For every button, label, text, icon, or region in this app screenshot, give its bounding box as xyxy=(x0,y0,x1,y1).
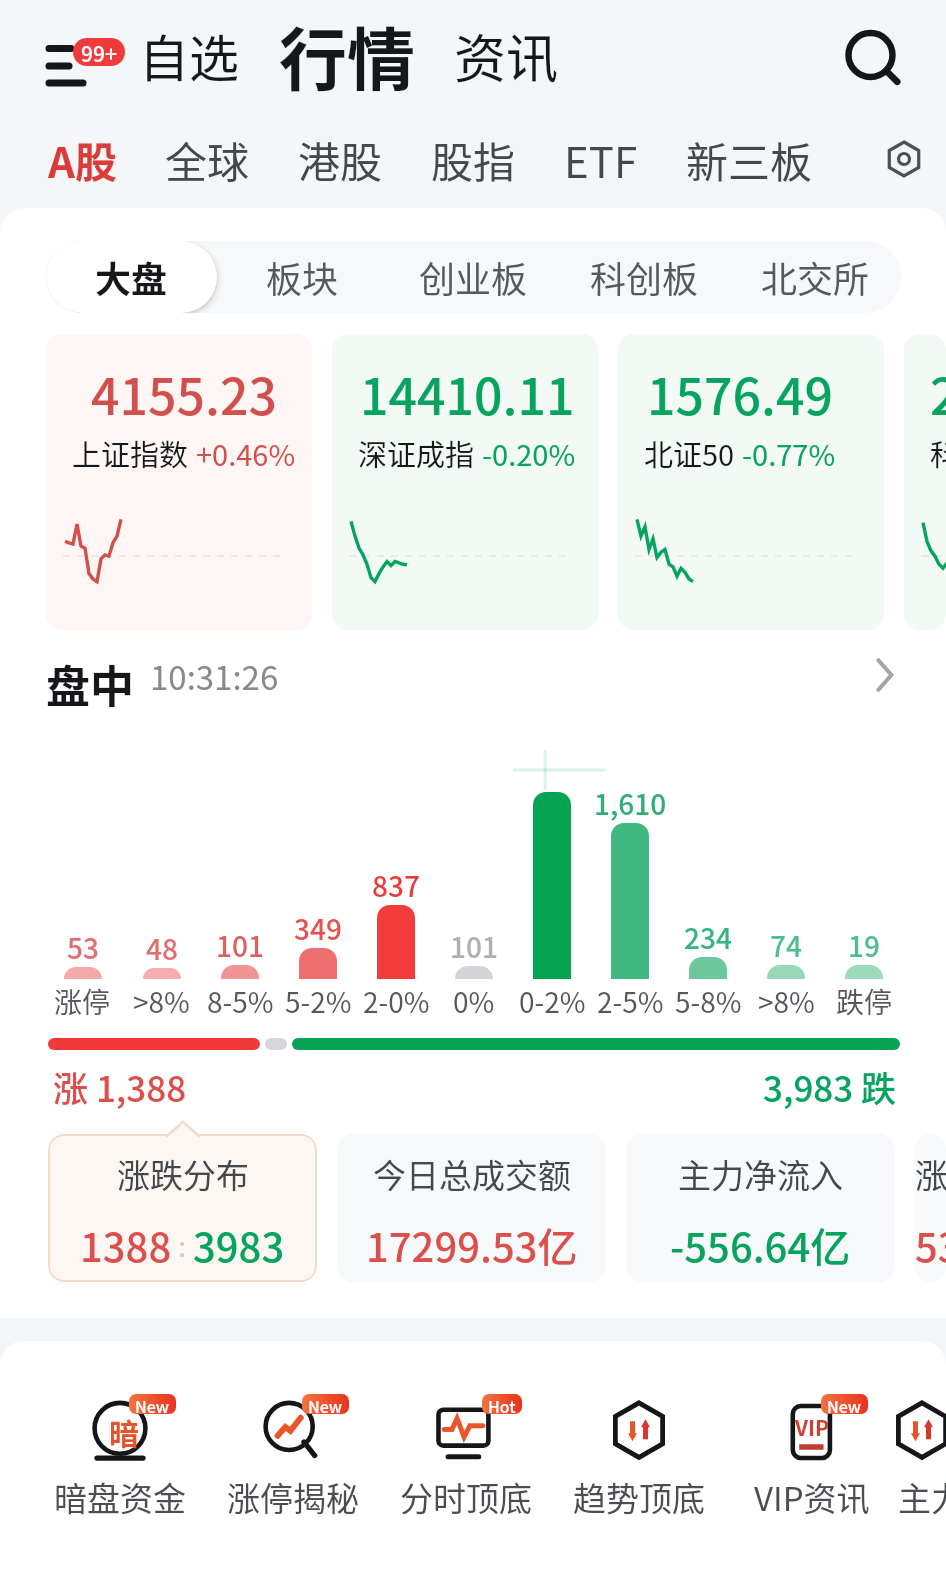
button[interactable]: Search xyxy=(834,17,910,93)
button[interactable]: 2-0% 837 xyxy=(357,768,435,1010)
staticText: 4155.23 xyxy=(91,357,277,429)
button[interactable]: 板块 xyxy=(217,241,388,313)
button[interactable]: 0-2% 1,920 xyxy=(513,768,591,1010)
staticText: >8% xyxy=(758,981,815,1022)
staticText: 1576.49 xyxy=(647,357,833,429)
button[interactable]: 创业板 xyxy=(388,241,559,313)
button[interactable]: 跌停 19 xyxy=(825,768,903,1010)
staticText: 主力大单 xyxy=(898,1473,946,1521)
button[interactable]: 涨停 53 xyxy=(43,768,122,1010)
staticText: 暗盘资金 xyxy=(54,1473,186,1521)
button[interactable]: 5-8% 234 xyxy=(669,768,747,1010)
staticText: 101 xyxy=(216,925,264,966)
button[interactable]: 14410.11 xyxy=(332,334,598,630)
button[interactable]: Hot xyxy=(379,1401,552,1521)
staticText: 跌停 xyxy=(836,981,893,1022)
button[interactable]: 0% 101 xyxy=(435,768,513,1010)
button[interactable]: 5-2% 349 xyxy=(279,768,357,1010)
staticText: 0% xyxy=(453,981,495,1022)
button[interactable]: 主力净流入 xyxy=(626,1134,895,1282)
staticText: 盘中 xyxy=(46,652,134,697)
staticText: 2251.21 xyxy=(930,357,946,429)
button[interactable]: Menu xyxy=(23,20,103,90)
staticText: 101 xyxy=(450,926,498,967)
button[interactable]: Settings xyxy=(874,129,934,189)
staticText: +0.46% xyxy=(196,432,296,474)
staticText: 74 xyxy=(770,925,802,966)
staticText: 趋势顶底 xyxy=(573,1473,705,1521)
staticText: 0-2% xyxy=(519,981,586,1022)
staticText: 股指 xyxy=(431,129,516,190)
staticText: 10:31:26 xyxy=(150,652,279,697)
staticText: 涨 1,388 xyxy=(53,1061,187,1112)
staticText: -0.20% xyxy=(482,432,576,474)
staticText: 暗 xyxy=(109,1410,139,1453)
staticText: 新三板 xyxy=(686,129,813,190)
staticText: 涨停家数 xyxy=(915,1150,946,1198)
button[interactable]: 大盘 xyxy=(46,241,217,313)
staticText: 主力净流入 xyxy=(678,1150,843,1198)
button[interactable]: 主力大单 xyxy=(898,1401,946,1521)
staticText: >8% xyxy=(133,981,190,1022)
staticText: New xyxy=(308,1394,343,1414)
button[interactable]: 涨停家数 xyxy=(915,1134,946,1282)
button[interactable]: 2251.21 xyxy=(904,334,946,630)
staticText: : xyxy=(172,1225,193,1266)
staticText: A股 xyxy=(48,129,117,190)
other: More xyxy=(862,653,906,697)
button[interactable]: 新三板 xyxy=(662,117,837,202)
staticText: 5-8% xyxy=(675,981,742,1022)
staticText: 分时顶底 xyxy=(400,1473,532,1521)
staticText: 53 xyxy=(67,927,99,968)
staticText: -556.64亿 xyxy=(670,1216,851,1274)
button[interactable]: New xyxy=(206,1401,379,1521)
button[interactable]: 盘中 xyxy=(0,652,946,697)
button[interactable]: 今日总成交额 xyxy=(337,1134,606,1282)
staticText: 资讯 xyxy=(454,18,559,93)
staticText: 科创板 xyxy=(590,251,699,303)
staticText: 17299.53亿 xyxy=(366,1216,578,1274)
staticText: VIP xyxy=(795,1412,829,1442)
button[interactable]: >8% 74 xyxy=(747,768,825,1010)
staticText: 19 xyxy=(848,925,880,966)
button[interactable]: 4155.23 xyxy=(46,334,312,630)
button[interactable]: 股指 xyxy=(407,117,540,202)
button[interactable]: >8% 48 xyxy=(122,768,201,1010)
button[interactable]: A股 xyxy=(24,117,141,202)
staticText: 大盘 xyxy=(95,251,168,303)
button[interactable]: VIP xyxy=(725,1401,898,1521)
staticText: 53家 xyxy=(915,1216,946,1274)
staticText: 1388 xyxy=(80,1216,172,1274)
button[interactable]: 港股 xyxy=(274,117,407,202)
button[interactable]: 科创板 xyxy=(559,241,730,313)
button[interactable]: 全球 xyxy=(141,117,274,202)
button[interactable]: 涨跌分布 xyxy=(48,1134,317,1282)
button[interactable]: 8-5% 101 xyxy=(201,768,279,1010)
staticText: 3,983 跌 xyxy=(763,1061,897,1112)
staticText: 涨跌分布 xyxy=(117,1150,249,1198)
staticText: New xyxy=(135,1394,170,1414)
button[interactable]: 趋势顶底 xyxy=(552,1401,725,1521)
staticText: 2-0% xyxy=(363,981,430,1022)
staticText: 深证成指 xyxy=(358,432,475,474)
staticText: 99+ xyxy=(81,38,117,66)
button[interactable]: 1576.49 xyxy=(618,334,884,630)
staticText: 自选 xyxy=(139,19,239,91)
staticText: Hot xyxy=(488,1394,516,1414)
button[interactable]: 北交所 xyxy=(730,241,901,313)
staticText: -0.77% xyxy=(742,432,836,474)
staticText: 1,610 xyxy=(594,783,667,824)
staticText: 上证指数 xyxy=(72,432,189,474)
button[interactable]: 暗 xyxy=(33,1401,206,1521)
staticText: 234 xyxy=(684,917,732,958)
staticText: New xyxy=(827,1394,862,1414)
button[interactable]: 2-5% 1,610 xyxy=(591,768,669,1010)
staticText: 349 xyxy=(294,908,342,949)
staticText: 北交所 xyxy=(761,251,870,303)
staticText: 港股 xyxy=(298,129,383,190)
staticText: 14410.11 xyxy=(360,357,575,429)
staticText: 48 xyxy=(146,928,178,969)
staticText: 涨停揭秘 xyxy=(227,1473,359,1521)
staticText: 8-5% xyxy=(207,981,274,1022)
button[interactable]: ETF xyxy=(540,117,662,202)
